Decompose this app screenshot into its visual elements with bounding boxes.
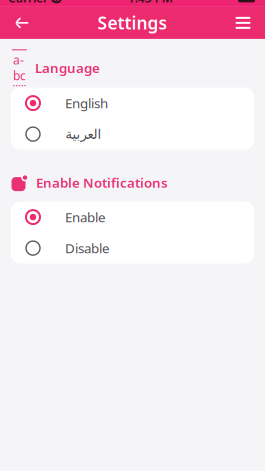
staticText: Carrier [8, 0, 48, 6]
staticText: abc [13, 52, 26, 84]
button[interactable]: Back [5, 7, 39, 39]
button[interactable]: Menu [226, 7, 260, 39]
button[interactable]: English [11, 88, 254, 119]
staticText: العربية [65, 126, 101, 142]
button[interactable]: Enable [11, 202, 254, 233]
staticText: Enable Notifications [36, 174, 168, 191]
staticText: English [65, 94, 108, 112]
staticText: Enable [65, 208, 106, 226]
staticText: 1:43 PM [128, 0, 173, 6]
staticText: Settings [97, 11, 167, 34]
button[interactable]: Disable [11, 233, 254, 264]
button[interactable]: العربية [11, 119, 254, 150]
staticText: Language [35, 59, 100, 77]
staticText: Disable [65, 239, 110, 257]
